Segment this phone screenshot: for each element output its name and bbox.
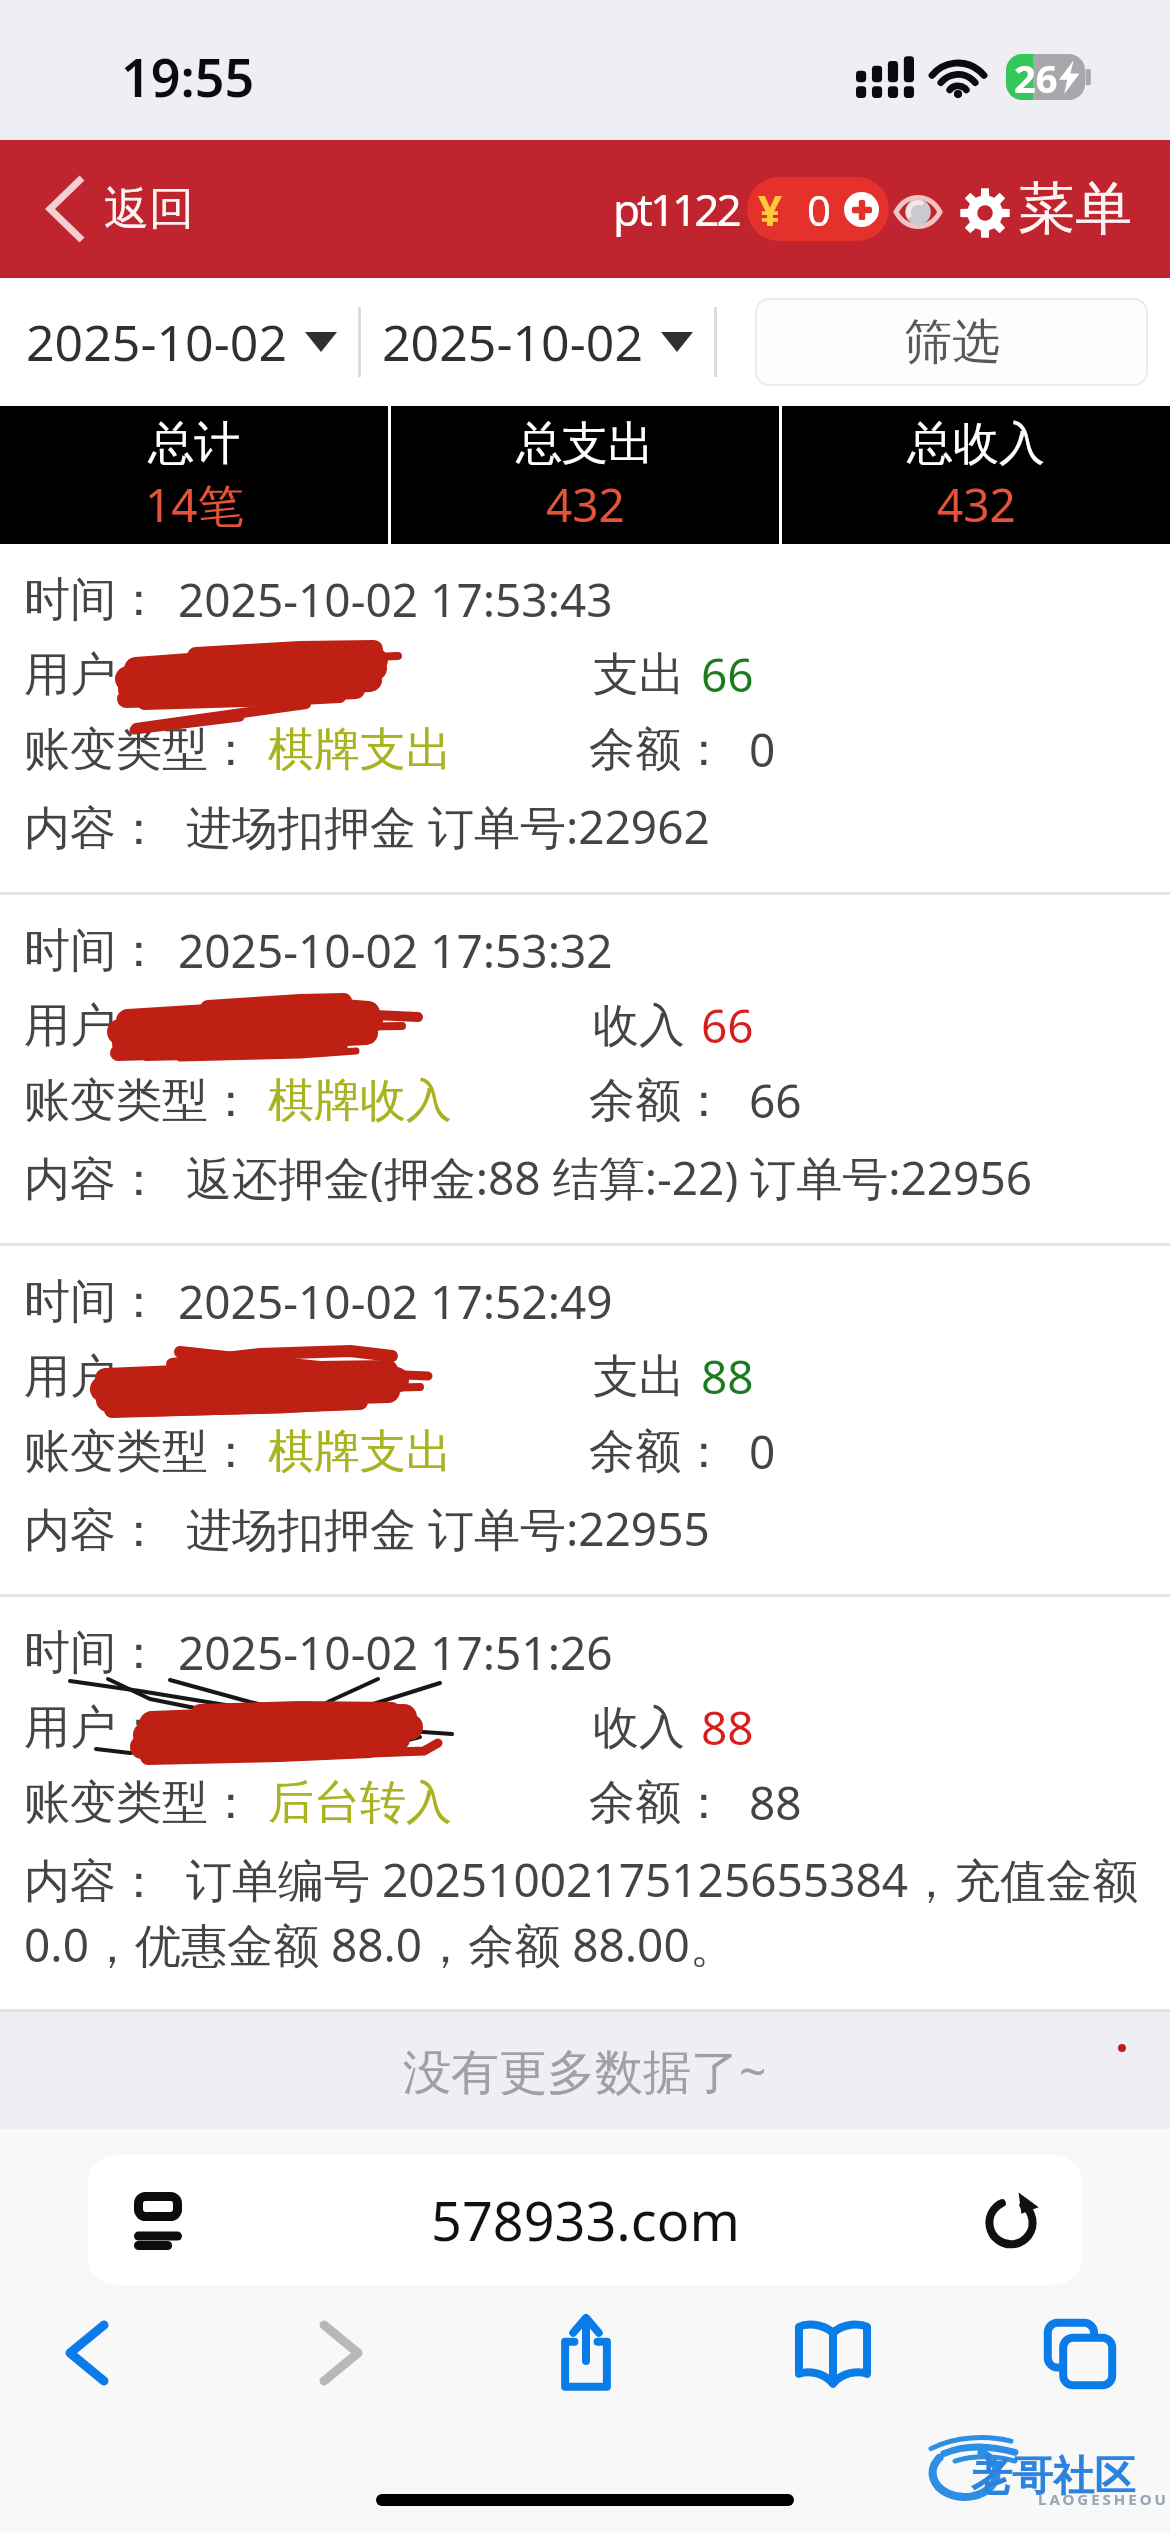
button[interactable]: 时间： — [0, 1246, 1170, 1594]
button[interactable]: Settings — [960, 188, 1010, 238]
staticText: 用户： — [24, 997, 162, 1055]
staticText: 收入 — [593, 997, 685, 1055]
staticText: 66 — [701, 643, 754, 706]
staticText: 支出 — [593, 1348, 685, 1406]
button[interactable]: Share — [557, 2315, 615, 2389]
button[interactable]: Toggle balance visibility — [896, 196, 940, 228]
button[interactable]: 总收入 — [782, 406, 1170, 544]
staticText: 66 — [749, 1069, 802, 1132]
button[interactable]: ¥ — [758, 177, 879, 241]
staticText: 2025-10-02 17:53:43 — [178, 568, 613, 631]
staticText: 账变类型： — [24, 1072, 254, 1130]
staticText: 用户： — [24, 1348, 162, 1406]
staticText: 棋牌支出 — [268, 1423, 452, 1481]
staticText: 14笔 — [145, 473, 244, 536]
staticText: 2025-10-02 17:51:26 — [178, 1621, 613, 1684]
staticText: 返回 — [104, 181, 194, 238]
staticText: 用户： — [24, 646, 162, 704]
button[interactable]: 时间： — [0, 895, 1170, 1243]
staticText: 总收入 — [907, 415, 1045, 473]
staticText: 2025-10-02 — [26, 308, 287, 376]
staticText: 66 — [701, 994, 754, 1057]
staticText: 内容： 返还押金(押金:88 结算:-22) 订单号:22956 — [24, 1146, 1154, 1209]
staticText: 没有更多数据了~ — [403, 2038, 767, 2104]
staticText: ¥ — [758, 181, 783, 238]
staticText: 总支出 — [516, 415, 654, 473]
staticText: 余额： — [589, 721, 727, 779]
staticText: 432 — [937, 473, 1016, 536]
staticText: 支出 — [593, 646, 685, 704]
button[interactable]: 2025-10-02 — [382, 308, 693, 376]
staticText: 账变类型： — [24, 1423, 254, 1481]
staticText: 筛选 — [904, 312, 1000, 372]
staticText: 时间： — [24, 571, 162, 629]
staticText: 26 — [1014, 52, 1058, 98]
staticText: 余额： — [589, 1072, 727, 1130]
staticText: 余额： — [589, 1423, 727, 1481]
button[interactable]: 菜单 — [1018, 173, 1132, 245]
button[interactable]: Back — [70, 2325, 104, 2381]
button[interactable]: Back — [50, 178, 194, 240]
button[interactable]: 时间： — [0, 1597, 1170, 2009]
staticText: 0 — [749, 1420, 776, 1483]
staticText: 后台转入 — [268, 1774, 452, 1832]
button[interactable]: 总支出 — [391, 406, 779, 544]
staticText: 时间： — [24, 922, 162, 980]
staticText: 432 — [546, 473, 625, 536]
staticText: 88 — [749, 1771, 802, 1834]
button[interactable]: Tabs — [1045, 2320, 1115, 2388]
staticText: 棋牌支出 — [268, 721, 452, 779]
button[interactable]: Bookmarks — [796, 2323, 870, 2385]
staticText: 2025-10-02 17:52:49 — [178, 1270, 613, 1333]
staticText: 内容： 订单编号 20251002175125655384，充值金额 0.0，优… — [24, 1848, 1154, 1975]
staticText: 老哥社区 — [971, 2451, 1135, 2503]
staticText: 88 — [701, 1345, 754, 1408]
staticText: 棋牌收入 — [268, 1072, 452, 1130]
other: Back — [50, 178, 82, 240]
staticText: 0 — [749, 718, 776, 781]
staticText: 时间： — [24, 1624, 162, 1682]
button[interactable]: Forward — [324, 2325, 358, 2381]
staticText: 内容： 进场扣押金 订单号:22955 — [24, 1497, 1154, 1560]
button[interactable]: 总计 — [0, 406, 388, 544]
button[interactable]: 2025-10-02 — [26, 308, 337, 376]
button[interactable]: 时间： — [0, 544, 1170, 892]
staticText: 0 — [807, 181, 832, 238]
staticText: 账变类型： — [24, 721, 254, 779]
other: Reload — [984, 2193, 1038, 2247]
staticText: 余额： — [589, 1774, 727, 1832]
staticText: pt1122 — [613, 179, 739, 239]
staticText: LAOGESHEOU — [1038, 2489, 1169, 2509]
staticText: 19:55 — [121, 41, 255, 112]
staticText: 2025-10-02 17:53:32 — [178, 919, 613, 982]
other: Page settings — [134, 2192, 182, 2250]
staticText: 账变类型： — [24, 1774, 254, 1832]
staticText: 88 — [701, 1696, 754, 1759]
staticText: 时间： — [24, 1273, 162, 1331]
staticText: 用户： — [24, 1699, 162, 1757]
staticText: 收入 — [593, 1699, 685, 1757]
staticText: 2025-10-02 — [382, 308, 643, 376]
button[interactable]: Page settings — [88, 2155, 1082, 2285]
staticText: 内容： 进场扣押金 订单号:22962 — [24, 795, 1154, 858]
staticText: 578933.com — [431, 2183, 740, 2257]
staticText: 总计 — [148, 415, 240, 473]
button[interactable]: 筛选 — [755, 298, 1148, 386]
